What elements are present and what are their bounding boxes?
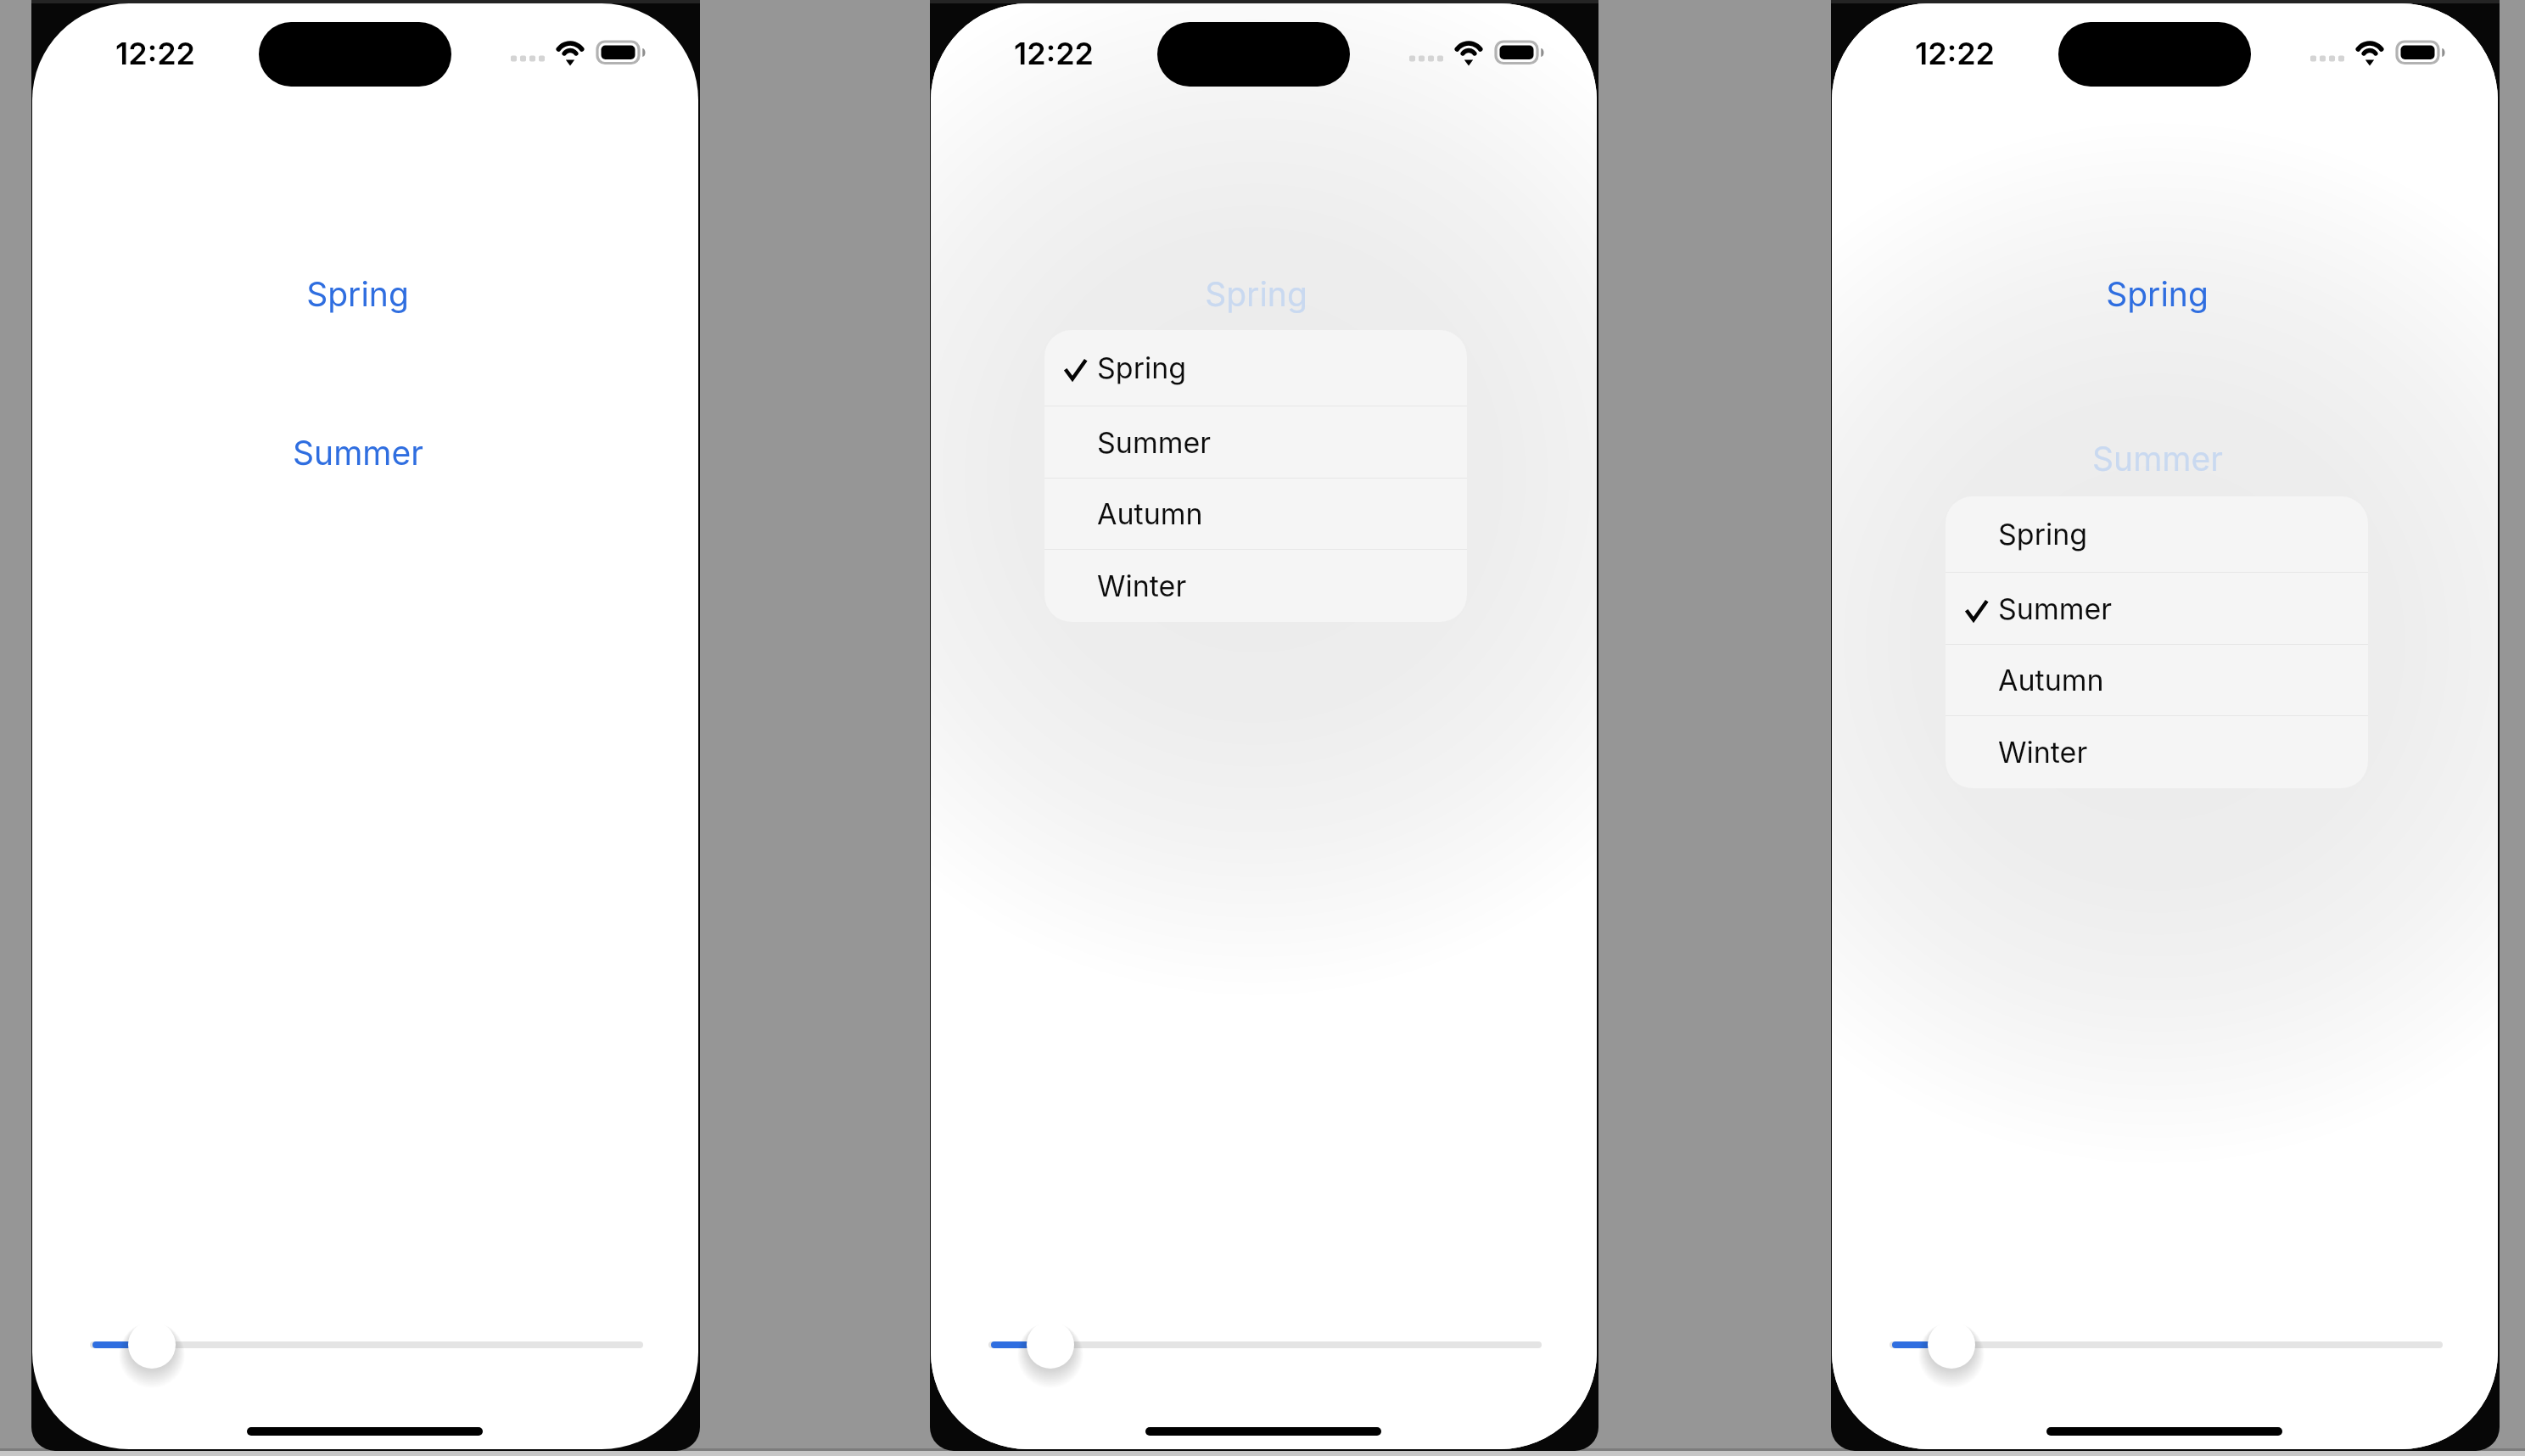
button[interactable]: Spring <box>931 274 1589 314</box>
button[interactable]: Value slider <box>58 1288 677 1407</box>
staticText: Spring <box>1205 274 1307 314</box>
staticText: Spring <box>2106 274 2209 314</box>
staticText: Summer <box>293 433 423 473</box>
staticText: Winter <box>1097 568 1187 603</box>
button[interactable]: Spring <box>1832 274 2490 314</box>
button[interactable]: Summer <box>1044 406 1467 478</box>
staticText: 12:22 <box>1014 35 1094 72</box>
staticText: Autumn <box>1998 663 2104 697</box>
staticText: Winter <box>1998 735 2088 770</box>
staticText: Summer <box>1097 425 1212 460</box>
other: Dynamic Island <box>259 22 451 87</box>
button[interactable]: Autumn <box>1044 479 1467 549</box>
button[interactable]: Value slider <box>1857 1288 2477 1407</box>
staticText: Summer <box>2092 439 2223 479</box>
button[interactable]: Autumn <box>1946 645 2368 715</box>
button[interactable]: Summer <box>32 433 691 473</box>
button[interactable]: Value slider <box>956 1288 1576 1407</box>
staticText: Spring <box>306 274 409 314</box>
other: Dynamic Island <box>1157 22 1350 87</box>
button[interactable]: Spring <box>32 274 691 314</box>
button[interactable]: Spring <box>1044 330 1467 406</box>
button[interactable]: Summer <box>1946 573 2368 644</box>
staticText: Spring <box>1097 350 1187 385</box>
staticText: Autumn <box>1097 496 1203 531</box>
button[interactable]: Spring <box>1946 496 2368 572</box>
staticText: Spring <box>1998 517 2088 552</box>
button[interactable]: Winter <box>1044 550 1467 622</box>
button[interactable]: Winter <box>1946 716 2368 788</box>
staticText: 12:22 <box>1915 35 1995 72</box>
other: Dynamic Island <box>2058 22 2251 87</box>
staticText: Summer <box>1998 591 2113 626</box>
staticText: 12:22 <box>115 35 195 72</box>
button[interactable]: Summer <box>1832 439 2490 479</box>
